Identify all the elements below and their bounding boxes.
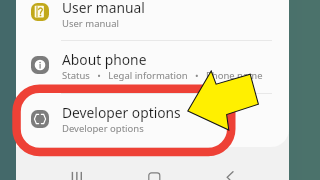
staticText: Developer options	[62, 103, 181, 122]
button[interactable]	[16, 39, 289, 92]
button[interactable]	[16, 93, 289, 146]
button[interactable]: Back	[218, 165, 242, 180]
button[interactable]: Home	[142, 165, 166, 180]
staticText: User manual	[62, 0, 145, 17]
staticText: User manual	[62, 17, 119, 30]
staticText: Developer options	[62, 122, 144, 135]
staticText: About phone	[62, 50, 147, 69]
button[interactable]	[16, 0, 289, 39]
staticText: Status • Legal information • Phone name	[62, 69, 263, 82]
button[interactable]: Recent apps	[65, 165, 89, 180]
